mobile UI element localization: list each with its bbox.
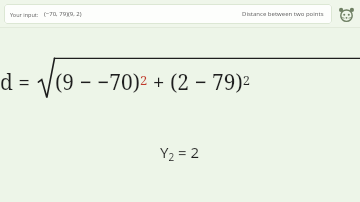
staticText: Y2 = 2 [160,142,200,164]
staticText: (9 − −70)2 + (2 − 79)2 [55,68,251,97]
staticText: d = [0,68,31,97]
staticText: Distance between two points [242,10,324,18]
staticText: Your input: [10,11,39,18]
staticText: (−70, 79)(9, 2) [44,10,82,18]
button[interactable]: App logo [337,5,356,24]
button[interactable]: Your input: [4,4,332,24]
